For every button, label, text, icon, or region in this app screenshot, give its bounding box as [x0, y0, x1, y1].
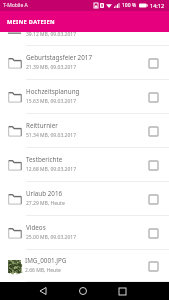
button[interactable]: Select Geburtstagsfeier 2017	[143, 53, 164, 74]
staticText: 27.29 MB, Heute	[26, 200, 65, 207]
staticText: Geburtstagsfeier 2017	[26, 53, 93, 62]
staticText: T-Mobile A	[3, 2, 28, 9]
button[interactable]: Testberichte	[0, 148, 169, 182]
staticText: Hochzeitsplanung	[26, 87, 80, 96]
button[interactable]: Hochzeitsplanung	[0, 80, 169, 114]
staticText: 25.00 MB, 09.03.2017	[26, 234, 77, 241]
button[interactable]: Reitturnier	[0, 114, 169, 148]
staticText: Videos	[26, 223, 46, 232]
button[interactable]: Select Reitturnier	[143, 121, 164, 142]
staticText: 21.39 MB, 09.03.2017	[26, 64, 77, 71]
button[interactable]: Back	[34, 282, 52, 300]
button[interactable]: Select Videos	[143, 223, 164, 244]
button[interactable]: Videos	[0, 216, 169, 250]
button[interactable]: Select Hochzeitsplanung	[143, 87, 164, 108]
button[interactable]: Recent apps	[113, 282, 131, 300]
staticText: 2.66 MB, Heute	[25, 267, 61, 274]
staticText: Urlaub 2016	[26, 189, 63, 198]
button[interactable]: Select Urlaub 2016	[143, 189, 164, 210]
staticText: 100 %	[122, 2, 137, 9]
staticText: 39.12 MB, 09.03.2017	[26, 31, 77, 38]
button[interactable]: Home	[74, 282, 92, 300]
staticText: MEINE DATEIEN	[7, 18, 55, 26]
button[interactable]: 39.12 MB, 09.03.2017	[0, 32, 169, 46]
staticText: 12.68 MB, 09.03.2017	[26, 166, 77, 173]
button[interactable]: Urlaub 2016	[0, 182, 169, 216]
button[interactable]: IMG_0001.JPG	[0, 250, 169, 282]
staticText: 14:12	[150, 2, 165, 9]
staticText: 51.34 MB, 09.03.2017	[26, 132, 77, 139]
staticText: Reitturnier	[26, 121, 58, 130]
button[interactable]: Select Testberichte	[143, 155, 164, 176]
staticText: IMG_0001.JPG	[25, 256, 67, 265]
staticText: 15.63 MB, 09.03.2017	[26, 98, 77, 105]
staticText: Testberichte	[26, 155, 63, 164]
button[interactable]: Select IMG_0001.JPG	[143, 256, 164, 277]
button[interactable]: Geburtstagsfeier 2017	[0, 46, 169, 80]
